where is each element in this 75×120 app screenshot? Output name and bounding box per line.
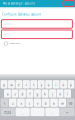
staticText: e — [18, 83, 20, 87]
button[interactable]: More options — [63, 0, 74, 6]
staticText: g — [36, 93, 38, 96]
button[interactable] — [34, 89, 41, 98]
button[interactable] — [1, 98, 8, 107]
staticText: , — [22, 111, 23, 115]
staticText: Email address — [4, 23, 14, 25]
button[interactable]: Password — [0, 30, 72, 38]
button[interactable]: 1 — [1, 80, 7, 88]
staticText: r — [26, 83, 27, 87]
button[interactable]: 9 — [60, 80, 67, 88]
button[interactable]: Show password — [0, 40, 75, 46]
staticText: 0 — [70, 82, 71, 83]
button[interactable] — [58, 98, 66, 107]
staticText: t — [33, 83, 34, 87]
staticText: i — [56, 83, 57, 87]
button[interactable] — [4, 89, 11, 98]
button[interactable] — [30, 108, 45, 116]
button[interactable] — [60, 108, 74, 116]
button[interactable] — [19, 89, 26, 98]
staticText: a — [7, 93, 8, 96]
staticText: ?123 — [4, 111, 11, 115]
button[interactable]: 4 — [23, 80, 30, 88]
button[interactable] — [25, 98, 33, 107]
button[interactable]: 0 — [68, 80, 74, 88]
button[interactable] — [9, 98, 17, 107]
staticText: Show password — [9, 43, 21, 44]
staticText: Configure Exchange account — [2, 13, 41, 16]
staticText: p — [70, 83, 72, 87]
staticText: o — [62, 83, 64, 87]
button[interactable] — [17, 98, 25, 107]
button[interactable]: 8 — [53, 80, 59, 88]
staticText: l — [67, 93, 68, 96]
staticText: w — [10, 83, 12, 87]
staticText: ⇧ — [3, 102, 5, 105]
button[interactable] — [50, 98, 58, 107]
staticText: Mir.as Exchange: account — [3, 2, 35, 5]
staticText: h — [44, 93, 46, 96]
button[interactable]: 3 — [15, 80, 22, 88]
button[interactable] — [26, 89, 33, 98]
staticText: c — [29, 102, 30, 105]
button[interactable] — [34, 98, 41, 107]
staticText: y — [41, 83, 42, 87]
button[interactable] — [57, 89, 63, 98]
staticText: u — [48, 83, 50, 87]
staticText: n — [53, 102, 55, 105]
button[interactable] — [42, 89, 48, 98]
button[interactable] — [49, 89, 56, 98]
button[interactable] — [15, 108, 30, 116]
button[interactable] — [64, 89, 71, 98]
button[interactable]: 7 — [45, 80, 52, 88]
button[interactable]: Email address — [0, 20, 72, 28]
staticText: q — [3, 83, 5, 87]
staticText: Password — [4, 33, 12, 35]
staticText: b — [45, 102, 47, 105]
staticText: . — [52, 111, 53, 115]
button[interactable] — [42, 98, 50, 107]
button[interactable] — [1, 108, 15, 116]
staticText: x — [20, 102, 21, 105]
staticText: d — [21, 93, 23, 96]
staticText: j — [52, 93, 53, 96]
staticText: ↵ — [66, 111, 68, 114]
button[interactable]: 2 — [8, 80, 15, 88]
button[interactable] — [45, 108, 59, 116]
button[interactable]: 5 — [30, 80, 37, 88]
button[interactable]: 6 — [38, 80, 45, 88]
staticText: m — [61, 102, 63, 105]
staticText: ⌫ — [69, 102, 73, 105]
staticText: z — [12, 102, 13, 105]
button[interactable] — [67, 98, 74, 107]
staticText: s — [14, 93, 15, 96]
staticText: v — [37, 102, 38, 105]
button[interactable] — [11, 89, 18, 98]
